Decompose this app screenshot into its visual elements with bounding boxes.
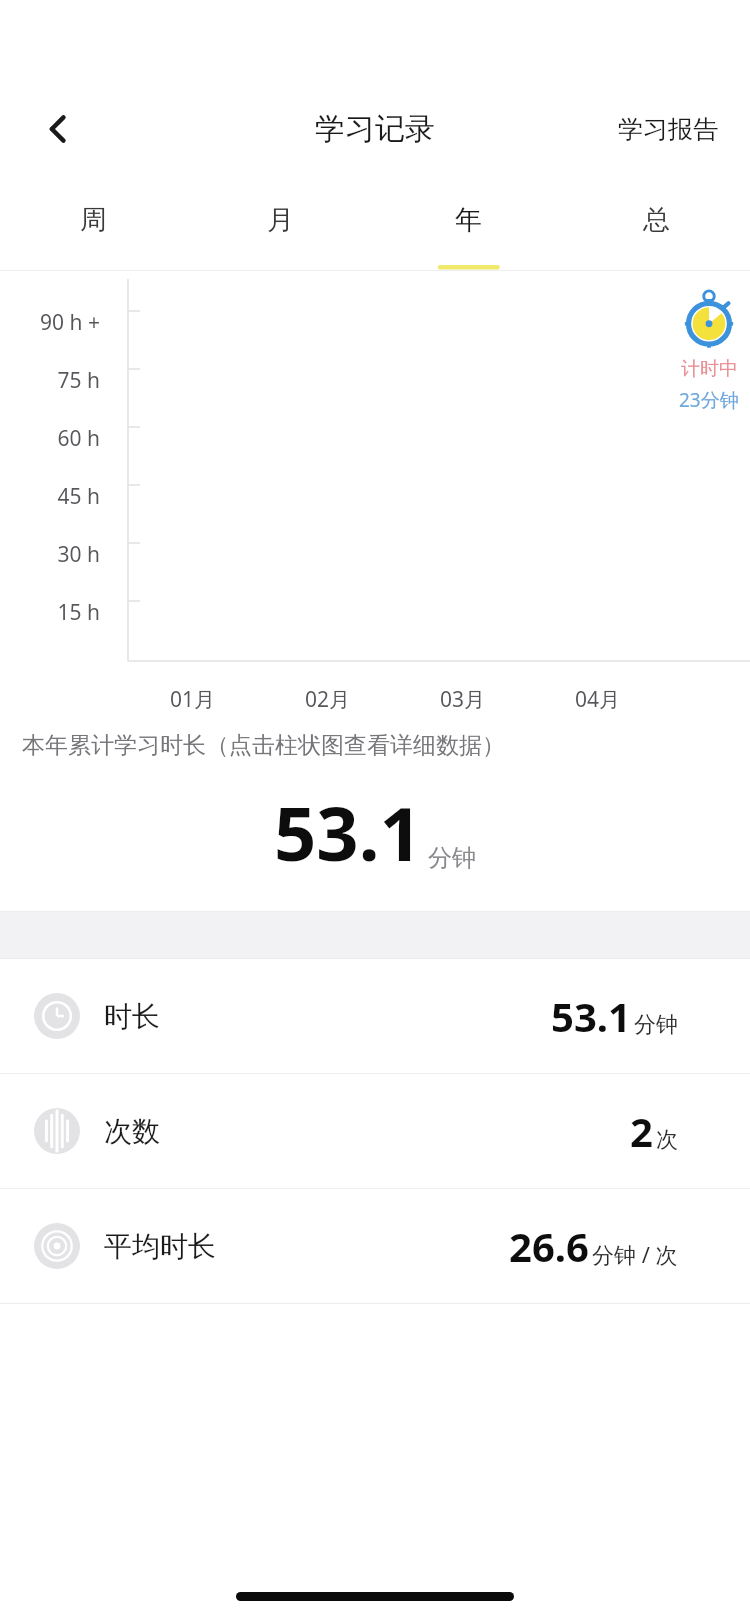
staticText: 分钟 <box>634 1011 678 1039</box>
button[interactable]: 平均时长 <box>0 1189 750 1303</box>
staticText: 学习记录 <box>315 110 435 148</box>
button[interactable]: 时长 <box>0 959 750 1073</box>
button[interactable]: 次数 <box>0 1074 750 1188</box>
staticText: 02月 <box>305 685 351 714</box>
staticText: 53.1 <box>551 989 631 1043</box>
staticText: 45 h <box>57 482 100 511</box>
button[interactable]: 周 <box>0 170 187 270</box>
staticText: 01月 <box>170 685 216 714</box>
staticText: 30 h <box>57 540 100 569</box>
staticText: 2 <box>630 1104 653 1158</box>
staticText: 周 <box>80 203 107 237</box>
staticText: 年 <box>455 203 482 237</box>
button[interactable]: 学习报告 <box>614 104 722 155</box>
staticText: 分钟 <box>428 843 476 873</box>
staticText: 53.1 <box>274 782 422 883</box>
button[interactable]: 年 <box>374 170 562 270</box>
staticText: 60 h <box>57 424 100 453</box>
staticText: 26.6 <box>509 1219 589 1273</box>
staticText: 23分钟 <box>679 387 739 413</box>
staticText: 平均时长 <box>104 1229 216 1264</box>
button[interactable]: 总 <box>562 170 750 270</box>
staticText: 时长 <box>104 999 160 1034</box>
button[interactable]: Back <box>26 97 90 161</box>
staticText: 15 h <box>57 598 100 627</box>
staticText: 90 h + <box>40 308 100 337</box>
staticText: 75 h <box>57 366 100 395</box>
staticText: 次 <box>656 1126 678 1154</box>
staticText: 本年累计学习时长（点击柱状图查看详细数据） <box>22 731 505 760</box>
staticText: 04月 <box>575 685 621 714</box>
staticText: 03月 <box>440 685 486 714</box>
staticText: 总 <box>643 203 670 237</box>
staticText: 学习报告 <box>618 114 718 145</box>
staticText: 次数 <box>104 1114 160 1149</box>
staticText: 月 <box>267 203 294 237</box>
button[interactable]: Timer running <box>650 277 750 433</box>
button[interactable]: 月 <box>187 170 374 270</box>
staticText: 计时中 <box>681 357 738 381</box>
staticText: 分钟 / 次 <box>592 1239 678 1269</box>
